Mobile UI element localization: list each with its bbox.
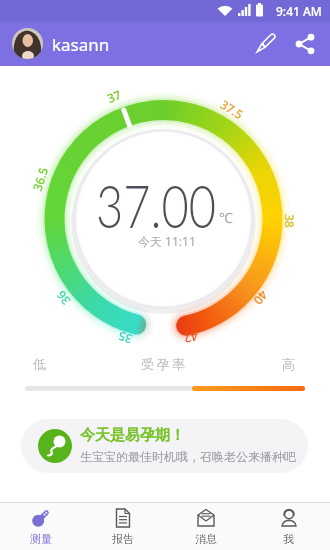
staticText: 测量 — [30, 532, 52, 546]
button[interactable]: 今天是易孕期！ — [21, 419, 308, 473]
staticText: 报告 — [112, 532, 134, 546]
staticText: 高 — [282, 356, 295, 372]
staticText: 生宝宝的最佳时机哦，召唤老公来播种吧 — [80, 449, 296, 464]
staticText: 今天是易孕期！ — [80, 426, 185, 445]
staticText: 40 — [250, 287, 272, 308]
button[interactable]: 我 — [247, 502, 330, 550]
staticText: 今天 11:11 — [138, 233, 196, 249]
staticText: 36.5 — [29, 165, 51, 193]
staticText: 37.5 — [218, 96, 246, 122]
staticText: 37 — [104, 86, 123, 106]
staticText: 38 — [282, 214, 298, 228]
staticText: 受孕率 — [141, 356, 188, 372]
staticText: 37.00 — [96, 171, 217, 241]
button[interactable]: 报告 — [82, 502, 164, 550]
staticText: 9:41 AM — [276, 3, 322, 19]
staticText: ℃ — [219, 208, 233, 227]
staticText: 我 — [283, 532, 294, 546]
button[interactable]: 测量 — [0, 502, 82, 550]
staticText: kasann — [52, 33, 110, 56]
button[interactable]: 消息 — [164, 502, 247, 550]
button[interactable] — [250, 29, 280, 59]
staticText: 消息 — [195, 532, 217, 546]
staticText: 42 — [182, 329, 200, 347]
button[interactable] — [290, 29, 320, 59]
staticText: 35 — [116, 328, 134, 348]
staticText: 36 — [52, 288, 74, 308]
button[interactable] — [12, 28, 43, 59]
staticText: 低 — [33, 356, 46, 372]
